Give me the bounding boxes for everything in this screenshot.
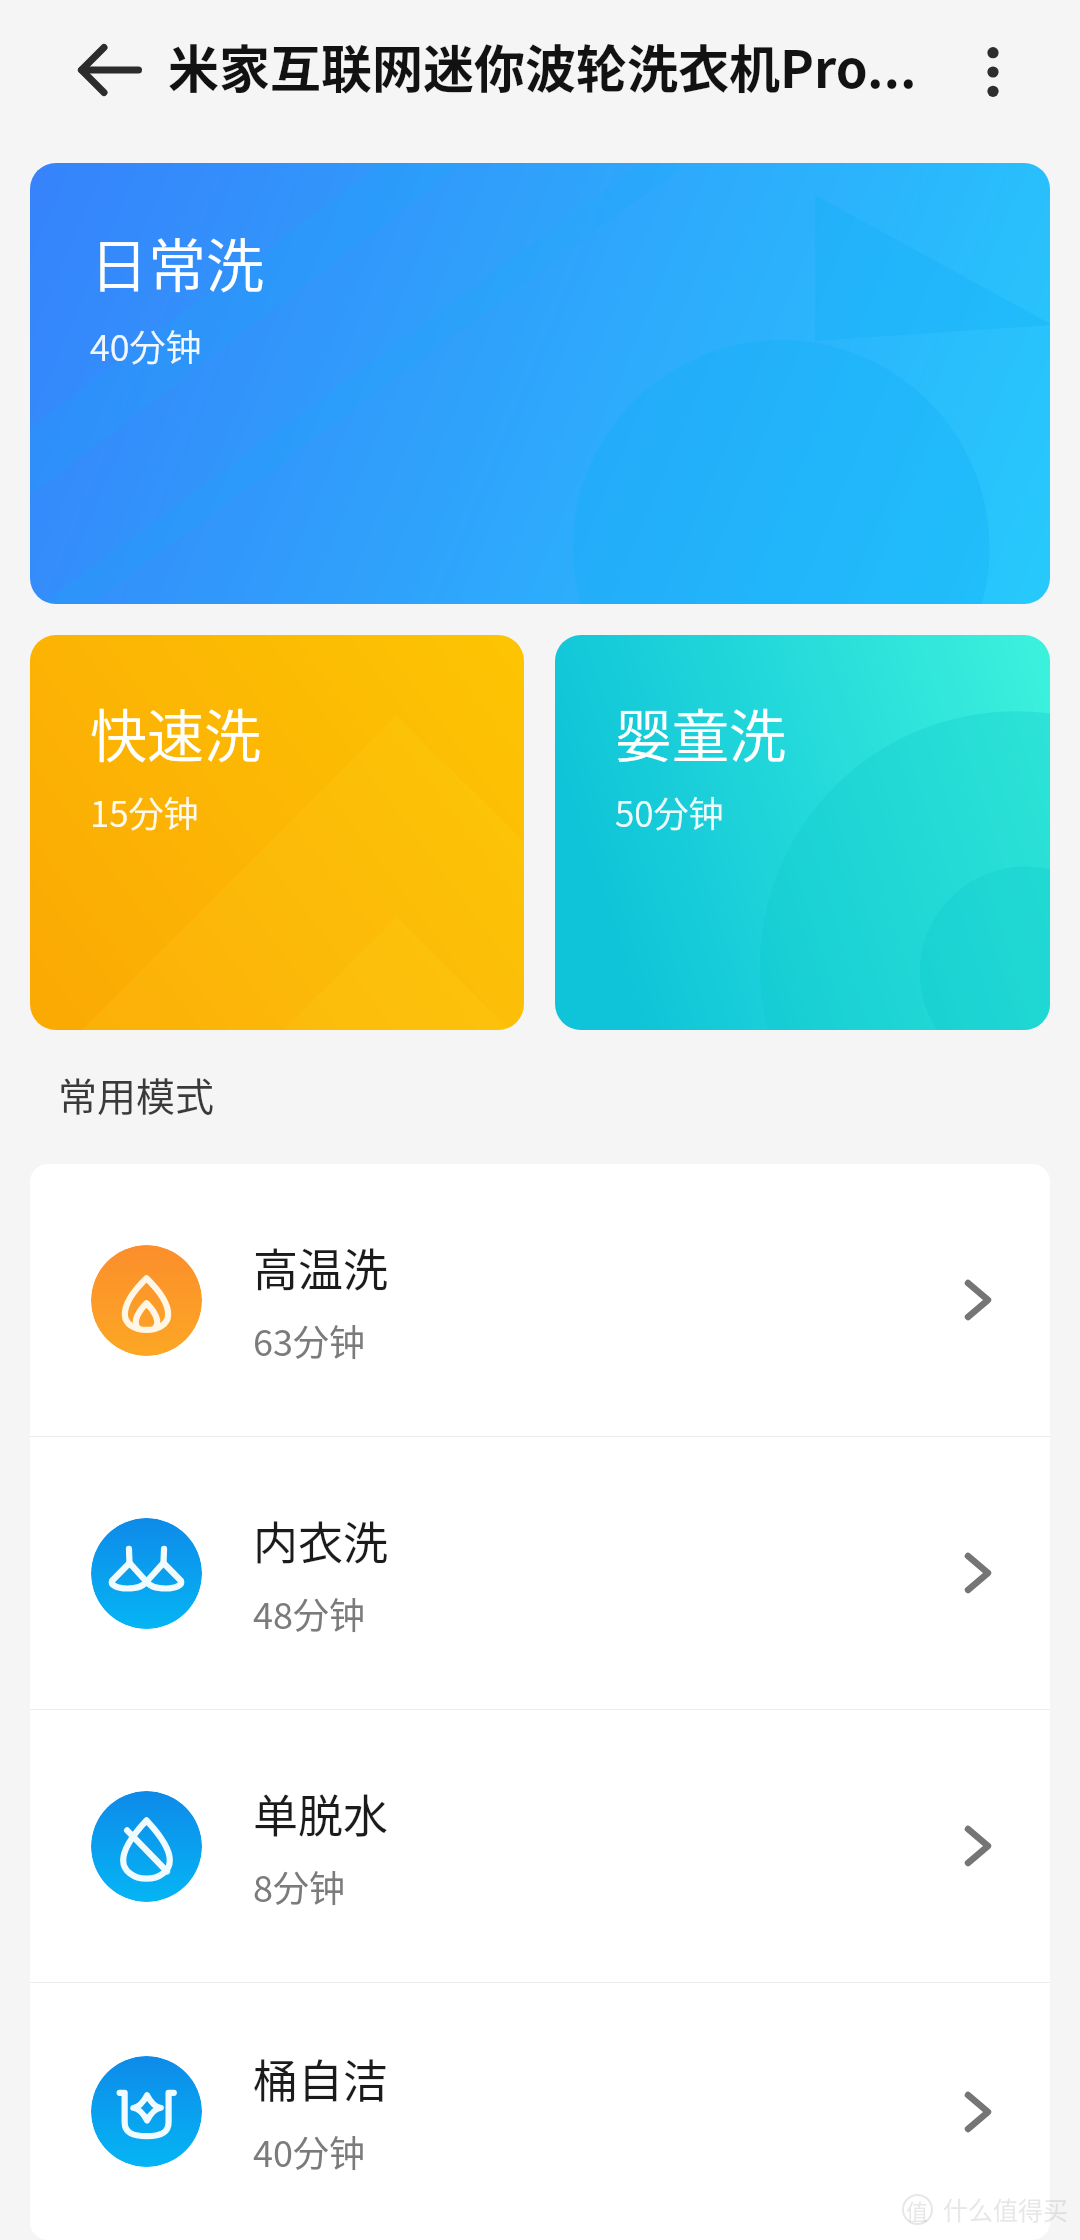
- button[interactable]: 婴童洗: [555, 635, 1050, 1030]
- button[interactable]: 单脱水: [30, 1710, 1050, 1982]
- button[interactable]: 快速洗: [30, 635, 524, 1030]
- staticText: 米家互联网迷你波轮洗衣机Pro...: [168, 29, 917, 103]
- staticText: 桶自洁: [253, 2046, 389, 2111]
- staticText: 63分钟: [253, 1314, 365, 1366]
- staticText: 15分钟: [90, 786, 199, 837]
- staticText: 什么值得买: [943, 2191, 1069, 2227]
- button[interactable]: Back: [70, 30, 150, 110]
- staticText: 8分钟: [253, 1860, 345, 1912]
- staticText: 40分钟: [253, 2125, 365, 2177]
- staticText: 单脱水: [253, 1781, 389, 1846]
- staticText: 50分钟: [615, 786, 724, 837]
- button[interactable]: 高温洗: [30, 1164, 1050, 1436]
- button[interactable]: 桶自洁: [30, 1983, 1050, 2240]
- staticText: 48分钟: [253, 1587, 365, 1639]
- staticText: 日常洗: [90, 220, 265, 304]
- staticText: 婴童洗: [615, 691, 786, 774]
- staticText: 常用模式: [58, 1066, 215, 1122]
- staticText: 值: [906, 2194, 929, 2225]
- button[interactable]: More options: [953, 30, 1033, 110]
- button[interactable]: 内衣洗: [30, 1437, 1050, 1709]
- button[interactable]: 日常洗: [30, 163, 1050, 604]
- staticText: 快速洗: [90, 691, 261, 774]
- staticText: 40分钟: [90, 319, 202, 371]
- staticText: 内衣洗: [253, 1508, 389, 1573]
- staticText: 高温洗: [253, 1235, 389, 1300]
